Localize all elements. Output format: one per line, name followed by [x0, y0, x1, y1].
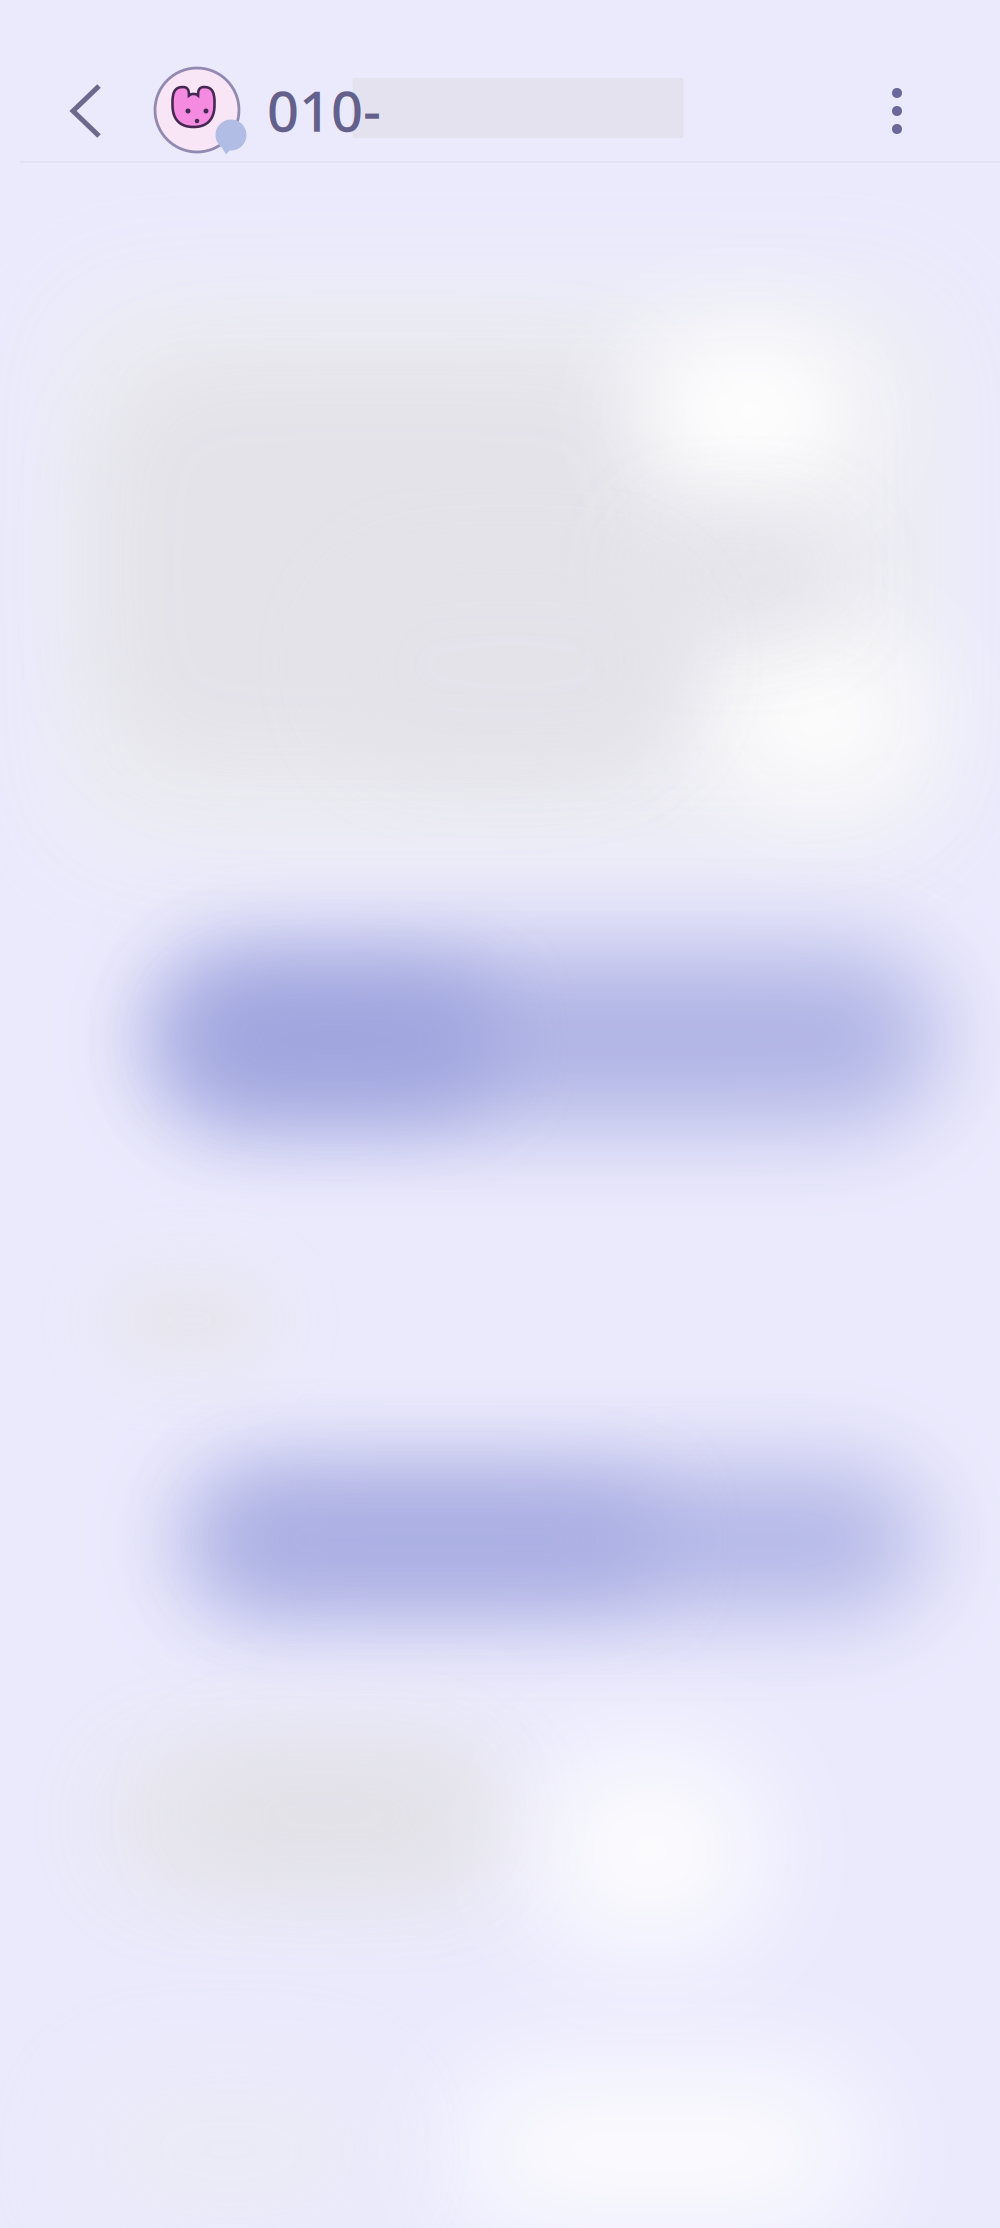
button[interactable]: 010-: [145, 52, 705, 168]
button[interactable]: Back: [38, 56, 134, 166]
button[interactable]: More options: [849, 56, 945, 166]
staticText: 010-: [267, 73, 381, 147]
